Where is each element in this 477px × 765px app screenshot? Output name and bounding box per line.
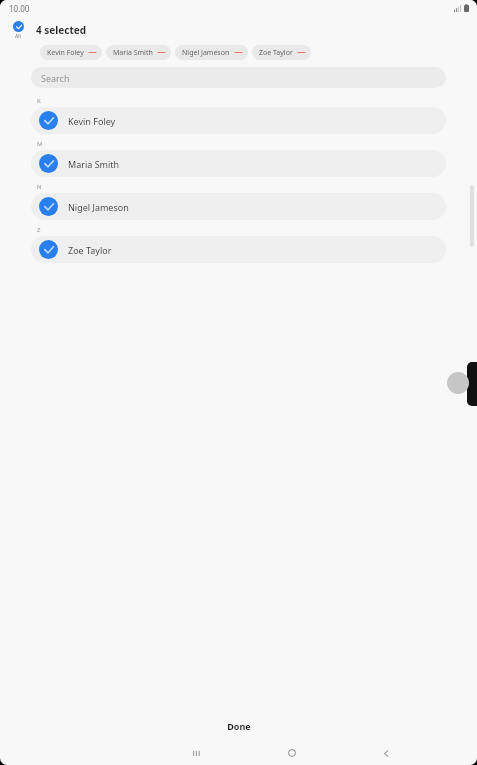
staticText: Zoe Taylor (259, 48, 293, 58)
button[interactable]: Search (31, 67, 446, 88)
button[interactable]: Select all (0, 16, 36, 44)
staticText: Search (41, 72, 70, 84)
button[interactable]: Recents (149, 741, 244, 765)
button[interactable]: Kevin Foley (31, 107, 446, 134)
staticText: Maria Smith (68, 158, 120, 170)
staticText: Zoe Taylor (68, 244, 112, 256)
staticText: M (37, 140, 43, 148)
staticText: Nigel Jameson (68, 201, 129, 213)
staticText: Maria Smith (113, 48, 153, 58)
staticText: N (37, 183, 42, 191)
button[interactable]: Zoe Taylor (252, 45, 311, 60)
button[interactable]: Back (339, 741, 434, 765)
staticText: Done (227, 720, 251, 732)
staticText: Kevin Foley (68, 115, 116, 127)
button[interactable]: Maria Smith (106, 45, 171, 60)
staticText: 10.00 (9, 3, 30, 14)
staticText: All (15, 33, 21, 40)
button[interactable]: Nigel Jameson (31, 193, 446, 220)
button[interactable]: Nigel Jameson (175, 45, 248, 60)
button[interactable]: Home (244, 741, 339, 765)
button[interactable]: Kevin Foley (40, 45, 102, 60)
staticText: Kevin Foley (47, 48, 84, 58)
staticText: Z (37, 226, 41, 234)
staticText: K (37, 97, 41, 105)
button[interactable]: Maria Smith (31, 150, 446, 177)
button[interactable]: Edge panel handle (467, 362, 477, 406)
button[interactable]: Done (0, 711, 477, 741)
button[interactable]: Zoe Taylor (31, 236, 446, 263)
staticText: Nigel Jameson (182, 48, 230, 58)
staticText: 4 selected (36, 23, 87, 37)
